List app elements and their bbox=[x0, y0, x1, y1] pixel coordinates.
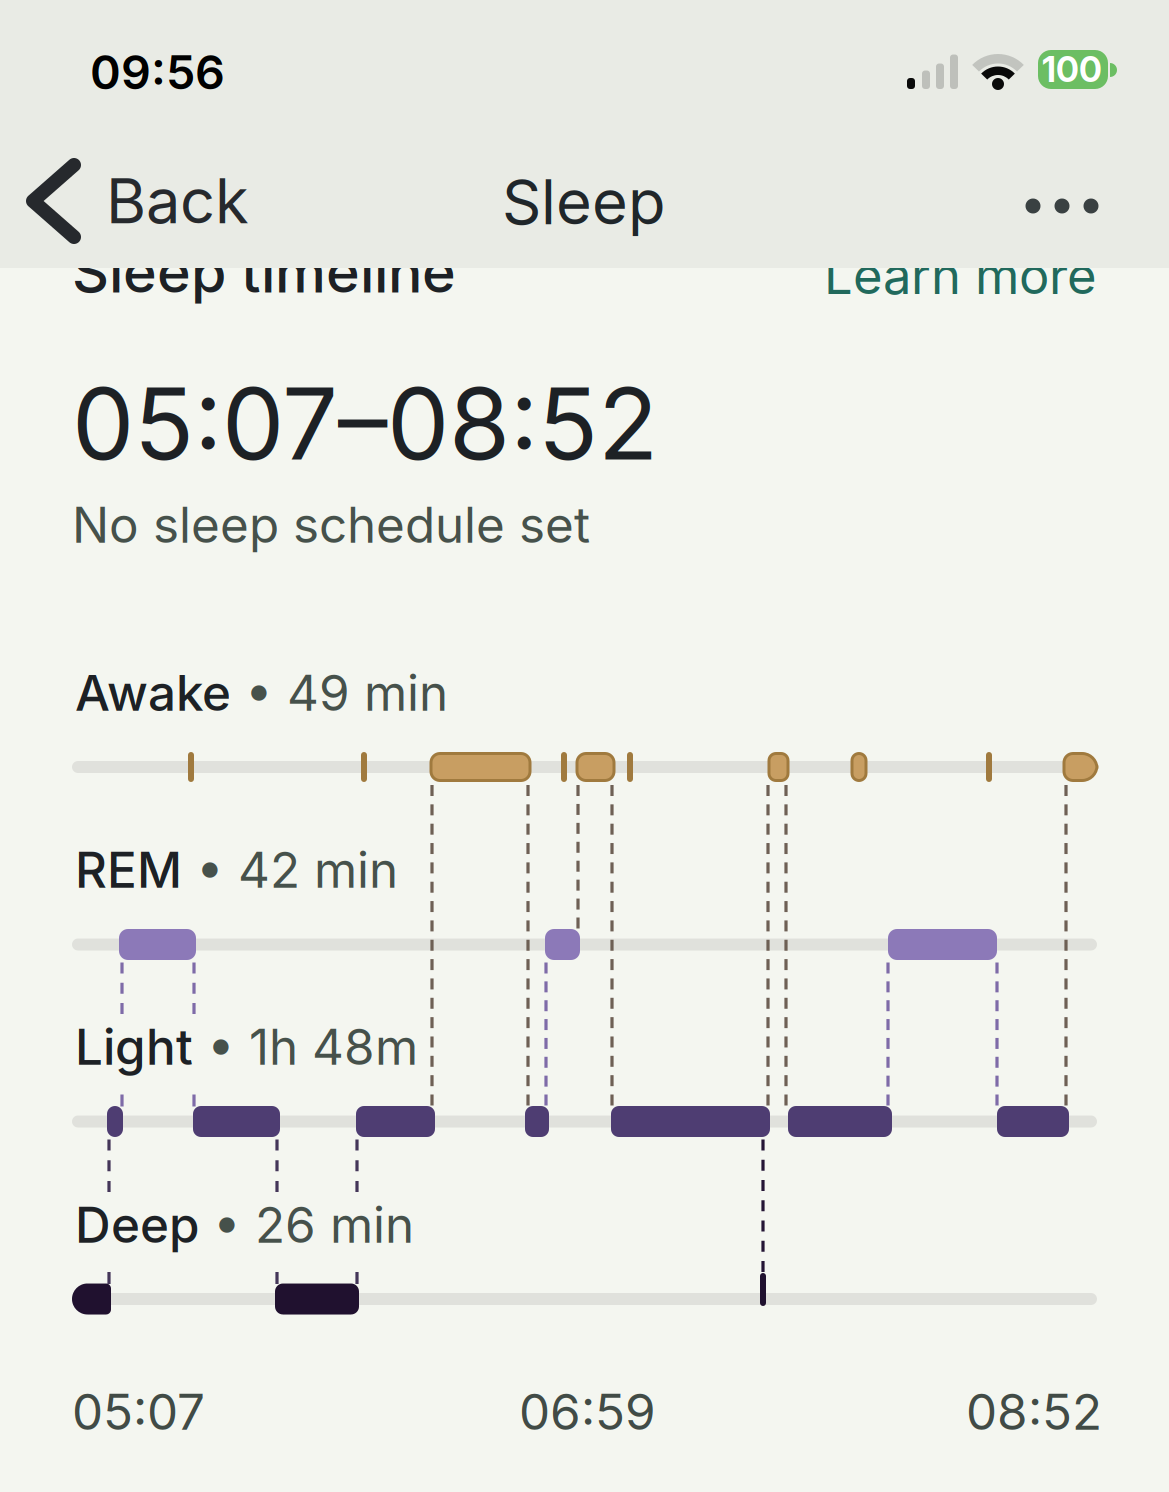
staticText: Sleep bbox=[502, 165, 666, 239]
staticText: Sleep timeline bbox=[72, 237, 456, 306]
staticText: No sleep schedule set bbox=[72, 495, 590, 555]
staticText: • 26 min bbox=[199, 1195, 414, 1255]
staticText: Deep bbox=[75, 1195, 199, 1255]
staticText: 06:59 bbox=[519, 1382, 656, 1442]
staticText: Awake bbox=[75, 663, 231, 723]
staticText: 09:56 bbox=[90, 44, 225, 100]
staticText: Learn more bbox=[824, 245, 1097, 306]
staticText: Light bbox=[75, 1017, 193, 1077]
button[interactable]: Learn more bbox=[824, 245, 1097, 306]
staticText: 05:07–08:52 bbox=[72, 364, 658, 483]
staticText: • 42 min bbox=[182, 840, 398, 900]
button[interactable]: Back bbox=[26, 159, 249, 243]
button[interactable]: More bbox=[1025, 198, 1099, 214]
staticText: 08:52 bbox=[966, 1382, 1102, 1442]
staticText: • 1h 48m bbox=[193, 1017, 418, 1077]
staticText: • 49 min bbox=[231, 663, 448, 723]
staticText: Back bbox=[106, 164, 249, 238]
staticText: REM bbox=[75, 840, 182, 900]
staticText: 05:07 bbox=[72, 1382, 205, 1442]
staticText: 100 bbox=[1042, 48, 1102, 90]
